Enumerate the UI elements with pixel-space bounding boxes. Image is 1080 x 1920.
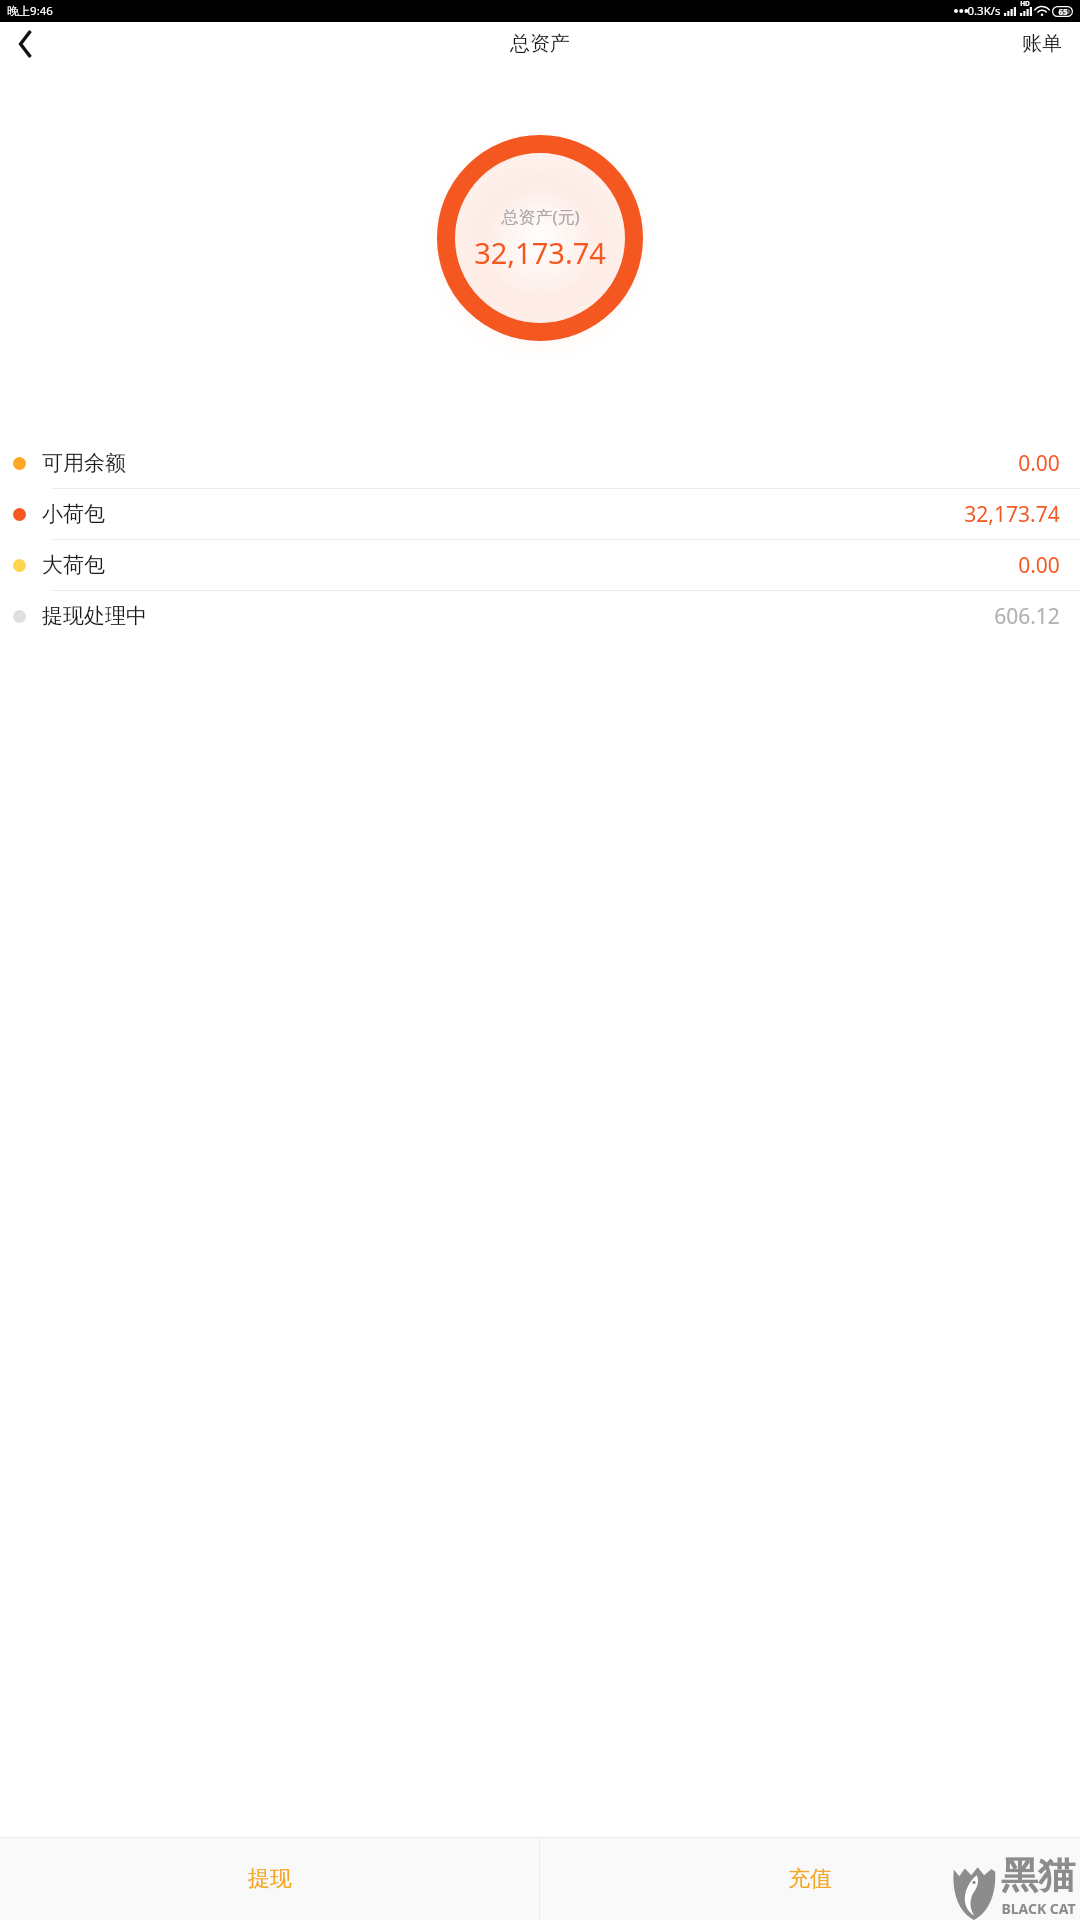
staticText: 0.00: [1018, 551, 1060, 580]
staticText: 账单: [1022, 31, 1062, 56]
button[interactable]: 返回: [0, 22, 52, 65]
staticText: 提现: [248, 1865, 292, 1893]
staticText: 总资产: [510, 31, 570, 56]
staticText: 32,173.74: [474, 233, 606, 272]
staticText: 65: [1058, 6, 1068, 17]
staticText: 可用余额: [42, 450, 126, 476]
staticText: 0.00: [1018, 449, 1060, 478]
button[interactable]: 提现处理中: [0, 591, 1080, 642]
staticText: HD: [1020, 0, 1030, 8]
staticText: 32,173.74: [964, 500, 1060, 529]
staticText: 0.3K/s: [967, 3, 1001, 19]
staticText: 提现处理中: [42, 603, 147, 629]
button[interactable]: 小荷包: [0, 489, 1080, 540]
staticText: 小荷包: [42, 501, 105, 527]
button[interactable]: 大荷包: [0, 540, 1080, 591]
staticText: 大荷包: [42, 552, 105, 578]
button[interactable]: 充值: [540, 1838, 1080, 1920]
staticText: 总资产(元): [501, 205, 580, 228]
staticText: 充值: [788, 1865, 832, 1893]
staticText: 黑猫: [1001, 1852, 1075, 1899]
button[interactable]: 账单: [1004, 22, 1080, 65]
staticText: 晚上9:46: [7, 3, 53, 19]
staticText: 606.12: [994, 602, 1060, 631]
button[interactable]: 提现: [0, 1838, 539, 1920]
button[interactable]: 可用余额: [0, 438, 1080, 489]
staticText: BLACK CAT: [1001, 1899, 1076, 1918]
